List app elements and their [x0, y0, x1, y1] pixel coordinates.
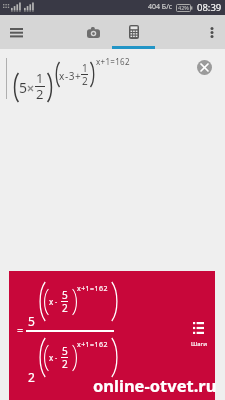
staticText: 2 — [36, 85, 44, 103]
staticText: 5 — [19, 78, 28, 97]
staticText: 2 — [28, 369, 35, 385]
staticText: 1 — [36, 69, 44, 87]
staticText: = — [17, 322, 24, 337]
staticText: Шаги — [191, 340, 207, 348]
staticText: x — [49, 296, 54, 307]
staticText: 08:39 — [197, 1, 222, 14]
button[interactable]: Menu — [1, 15, 31, 49]
button[interactable]: Scan with camera — [75, 15, 111, 49]
staticText: 404 Б/с — [148, 2, 173, 12]
staticText: - — [55, 353, 58, 363]
staticText: 5 — [28, 313, 35, 329]
staticText: 2 — [82, 74, 88, 88]
button[interactable]: More options — [199, 15, 225, 49]
staticText: 5 — [62, 344, 68, 358]
staticText: x+1=162 — [77, 284, 108, 294]
staticText: 2 — [62, 301, 68, 315]
staticText: x+1=162 — [96, 56, 130, 67]
staticText: x — [49, 352, 54, 363]
staticText: 1 — [82, 61, 88, 75]
staticText: x+1=162 — [77, 340, 108, 350]
button[interactable]: Calculator — [112, 15, 155, 49]
staticText: 5 — [62, 288, 68, 302]
staticText: online-otvet.ru — [93, 374, 217, 396]
staticText: x-3+ — [59, 69, 82, 83]
staticText: - — [55, 297, 58, 307]
staticText: 2 — [62, 357, 68, 371]
button[interactable]: Clear expression — [197, 60, 212, 75]
staticText: 42% — [178, 4, 189, 11]
button[interactable]: Show steps — [188, 315, 215, 349]
